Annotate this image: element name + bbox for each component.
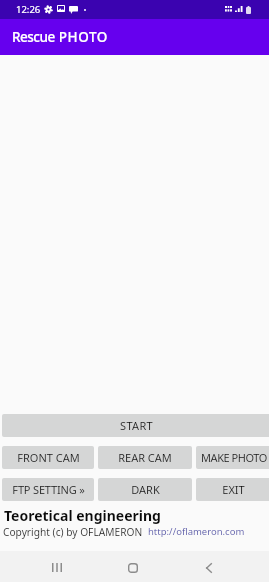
- button[interactable]: Back: [189, 552, 229, 582]
- button[interactable]: MAKE PHOTO: [196, 446, 269, 469]
- staticText: Rescue PHOTO: [12, 28, 108, 46]
- button[interactable]: FTP SETTING »: [2, 478, 94, 501]
- staticText: DARK: [131, 482, 160, 497]
- button[interactable]: FRONT CAM: [2, 446, 94, 469]
- staticText: FTP SETTING »: [12, 482, 85, 497]
- button[interactable]: Recent apps: [37, 552, 77, 582]
- staticText: Copyright (c) by OFLAMERON: [3, 525, 143, 539]
- staticText: REAR CAM: [118, 450, 172, 465]
- staticText: EXIT: [222, 482, 245, 497]
- button[interactable]: Home: [113, 552, 153, 582]
- button[interactable]: http://oflameron.com: [148, 525, 245, 538]
- staticText: Teoretical engineering: [4, 506, 161, 525]
- staticText: FRONT CAM: [17, 450, 80, 465]
- staticText: START: [120, 418, 153, 433]
- button[interactable]: REAR CAM: [98, 446, 192, 469]
- button[interactable]: EXIT: [196, 478, 269, 501]
- button[interactable]: DARK: [98, 478, 192, 501]
- staticText: 12:26: [16, 3, 41, 16]
- staticText: MAKE PHOTO: [201, 450, 267, 465]
- button[interactable]: START: [2, 414, 269, 437]
